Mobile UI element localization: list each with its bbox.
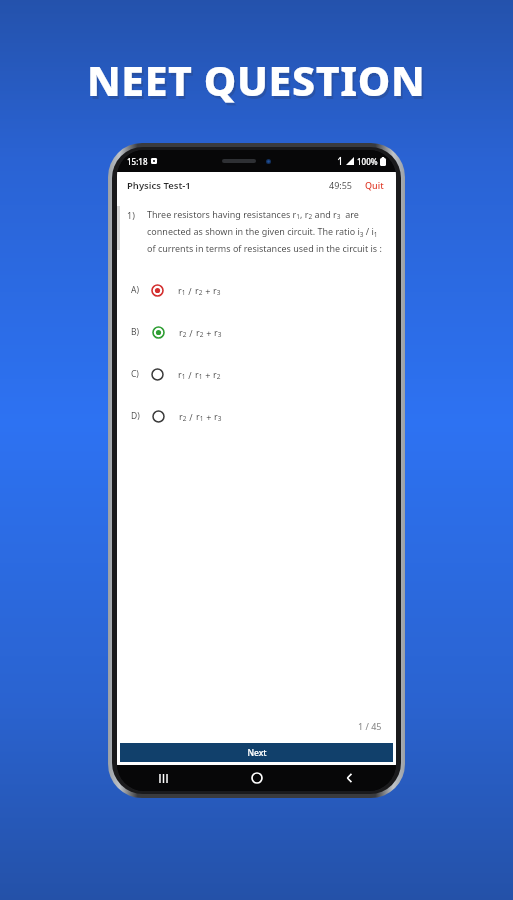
staticText: 100%: [357, 156, 378, 167]
staticText: Physics Test-1: [127, 179, 191, 192]
staticText: r3: [213, 284, 221, 297]
button[interactable]: B): [117, 311, 396, 353]
staticText: D): [131, 410, 140, 422]
staticText: /: [186, 285, 195, 297]
staticText: r2: [195, 284, 203, 297]
staticText: r3: [214, 410, 222, 423]
staticText: NEET QUESTION: [89, 55, 428, 111]
staticText: /: [186, 369, 195, 381]
button[interactable]: Home: [210, 765, 303, 791]
button[interactable]: C): [117, 353, 396, 395]
staticText: /: [187, 411, 196, 423]
staticText: r1: [196, 410, 204, 423]
staticText: +: [203, 285, 213, 297]
staticText: r2: [196, 326, 204, 339]
staticText: 1): [127, 209, 135, 221]
button[interactable]: A): [117, 269, 396, 311]
other: Selected incorrect option: [151, 284, 164, 297]
button[interactable]: Back: [303, 765, 396, 791]
staticText: +: [204, 411, 214, 423]
staticText: r3: [214, 326, 222, 339]
staticText: r1: [178, 284, 186, 297]
staticText: r1: [195, 368, 203, 381]
button[interactable]: Recent apps: [117, 765, 210, 791]
staticText: 15:18: [127, 156, 148, 167]
button[interactable]: D): [117, 395, 396, 437]
staticText: 1 / 45: [358, 720, 382, 732]
staticText: r2: [179, 326, 187, 339]
staticText: C): [131, 368, 139, 380]
staticText: 49:55: [329, 179, 353, 191]
staticText: Next: [247, 747, 267, 759]
staticText: /: [187, 327, 196, 339]
staticText: r1: [178, 368, 186, 381]
staticText: +: [203, 369, 213, 381]
staticText: Quit: [365, 179, 384, 191]
staticText: Three resistors having resistances r1, r…: [147, 208, 384, 255]
staticText: B): [131, 326, 140, 338]
staticText: NEET QUESTION: [87, 52, 426, 108]
staticText: A): [131, 284, 139, 296]
staticText: r2: [213, 368, 221, 381]
other: Correct option: [152, 326, 165, 339]
other: Unselected option: [151, 368, 164, 381]
staticText: +: [204, 327, 214, 339]
other: Unselected option: [152, 410, 165, 423]
staticText: r2: [179, 410, 187, 423]
button[interactable]: Next: [120, 743, 393, 762]
button[interactable]: Quit: [363, 177, 386, 193]
